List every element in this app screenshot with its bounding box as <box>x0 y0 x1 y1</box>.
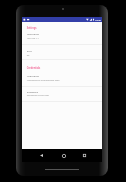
staticText: 12:30 <box>95 18 101 21</box>
staticText: 80 <box>27 53 30 56</box>
staticText: Hostname <box>27 32 39 36</box>
staticText: Port <box>27 49 32 53</box>
button[interactable]: Back <box>36 149 47 162</box>
staticText: 192.168.1.1 <box>27 36 39 39</box>
button[interactable]: Username <box>22 71 102 86</box>
button[interactable]: Hostname <box>22 30 102 44</box>
staticText: Username to authenticate with <box>27 78 60 81</box>
staticText: Password <box>27 90 38 93</box>
button[interactable]: Password <box>22 86 102 101</box>
button[interactable]: Home <box>58 149 69 162</box>
staticText: Settings <box>27 26 37 29</box>
staticText: Username <box>27 74 39 77</box>
staticText: Password of the user <box>27 93 49 96</box>
staticText: Credentials <box>27 66 41 69</box>
button[interactable]: Port <box>22 44 102 59</box>
button[interactable]: Recent apps <box>79 149 90 162</box>
